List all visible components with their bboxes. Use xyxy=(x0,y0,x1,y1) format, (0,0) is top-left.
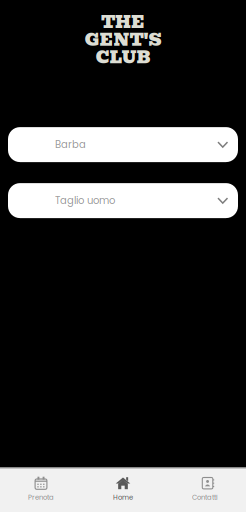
staticText: Home xyxy=(113,493,133,502)
button[interactable]: Prenota xyxy=(0,469,82,512)
button[interactable]: Home xyxy=(82,469,164,512)
staticText: Prenota xyxy=(28,493,54,502)
button[interactable]: Contatti xyxy=(164,469,246,512)
staticText: Contatti xyxy=(192,493,218,502)
staticText: Barba xyxy=(55,138,86,152)
button[interactable]: Taglio uomo xyxy=(8,183,238,218)
staticText: GENT'S xyxy=(84,26,161,53)
staticText: Taglio uomo xyxy=(55,194,115,208)
button[interactable]: Barba xyxy=(8,127,238,162)
staticText: CLUB xyxy=(95,43,150,71)
staticText: THE xyxy=(101,8,145,36)
